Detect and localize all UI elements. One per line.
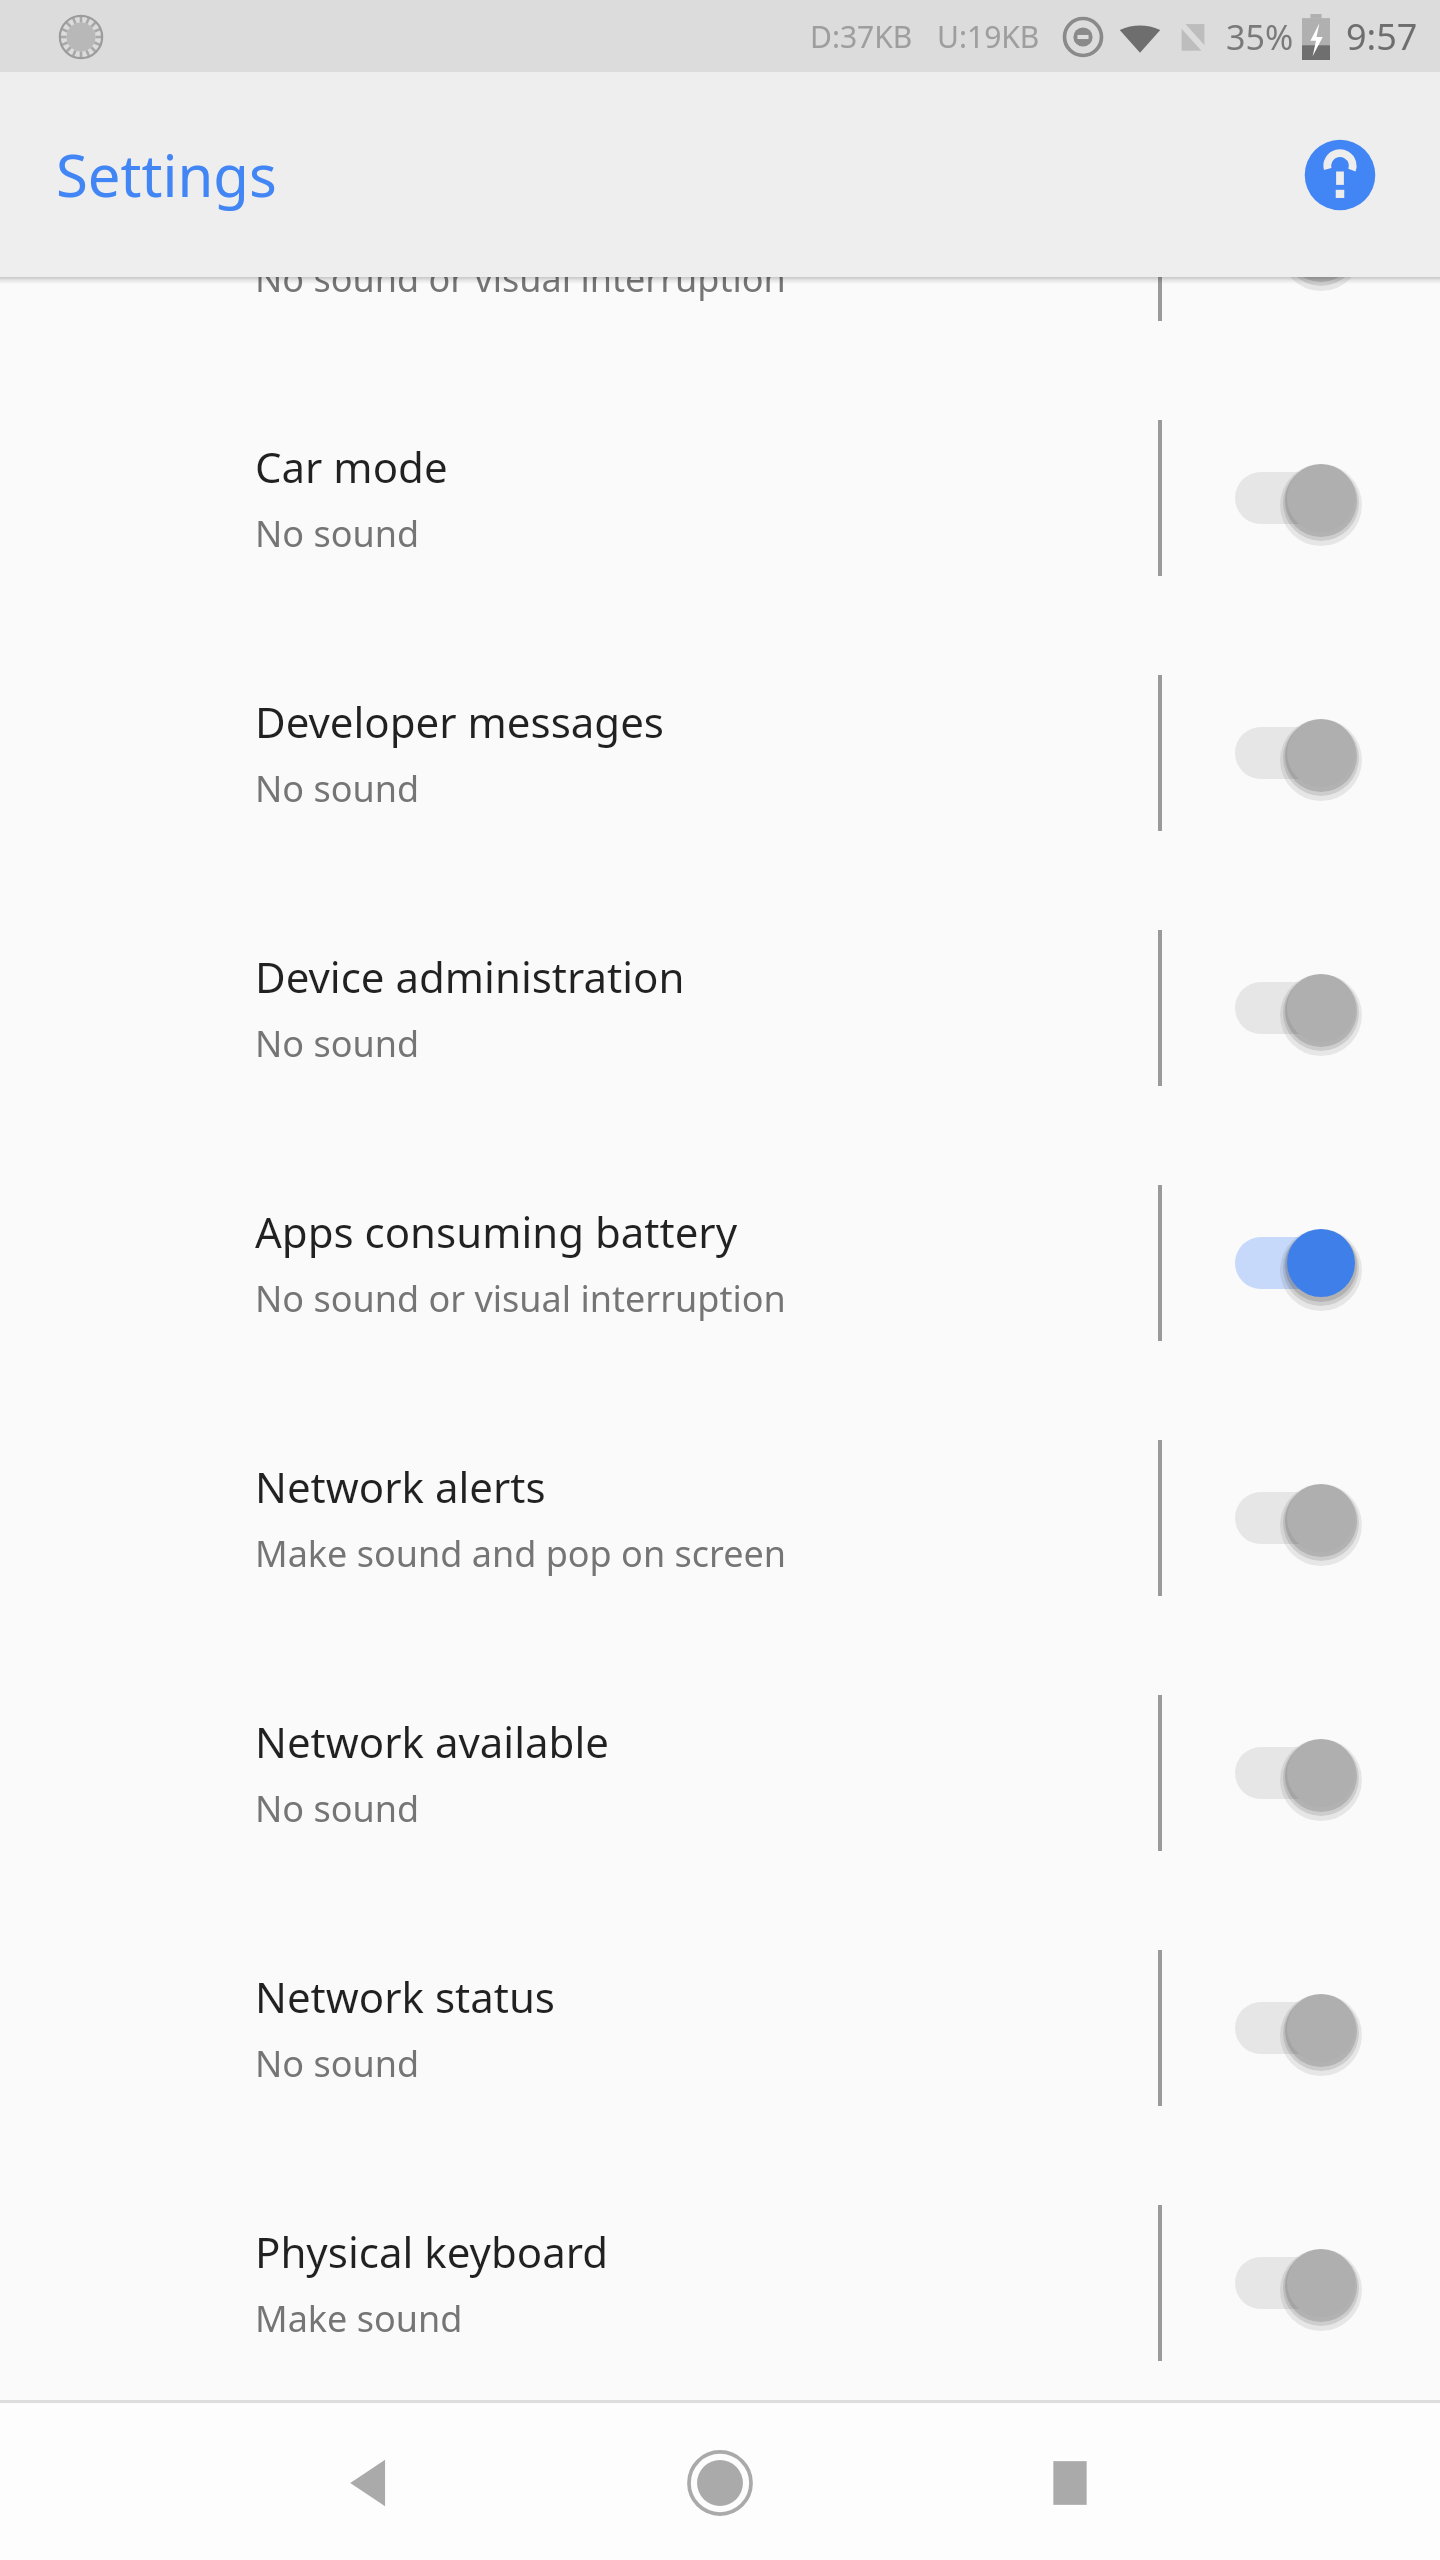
staticText: Physical keyboard: [255, 2223, 609, 2280]
button[interactable]: Home: [640, 2403, 800, 2560]
staticText: 35%: [1226, 14, 1294, 60]
staticText: No sound: [255, 2039, 420, 2088]
staticText: Network alerts: [255, 1458, 546, 1515]
staticText: App activity: [255, 183, 483, 240]
button[interactable]: Toggle App activity: [1205, 163, 1415, 323]
staticText: No sound: [255, 509, 420, 558]
staticText: Developer messages: [255, 693, 664, 750]
button[interactable]: Toggle Apps consuming battery: [1205, 1183, 1415, 1343]
staticText: U:19KB: [937, 16, 1040, 57]
staticText: No sound or visual interruption: [255, 1274, 786, 1323]
staticText: Device administration: [255, 948, 685, 1005]
button[interactable]: Toggle Network alerts: [1205, 1438, 1415, 1598]
staticText: Settings: [56, 135, 277, 214]
button[interactable]: Network available: [0, 1645, 1440, 1900]
button[interactable]: Physical keyboard: [0, 2155, 1440, 2400]
staticText: No sound: [255, 764, 420, 813]
staticText: Make sound: [255, 2294, 463, 2343]
staticText: D:37KB: [810, 16, 913, 57]
button[interactable]: Network status: [0, 1900, 1440, 2155]
button[interactable]: App activity: [0, 115, 1440, 370]
button[interactable]: Toggle Network status: [1205, 1948, 1415, 2108]
button[interactable]: Developer messages: [0, 625, 1440, 880]
button[interactable]: Toggle Device administration: [1205, 928, 1415, 1088]
button[interactable]: Help: [1292, 127, 1388, 223]
staticText: Car mode: [255, 438, 448, 495]
staticText: No sound: [255, 1784, 420, 1833]
button[interactable]: Car mode: [0, 370, 1440, 625]
button[interactable]: Toggle Car mode: [1205, 418, 1415, 578]
button[interactable]: Toggle Developer messages: [1205, 673, 1415, 833]
staticText: Apps consuming battery: [255, 1203, 738, 1260]
staticText: No sound or visual interruption: [255, 254, 786, 303]
button[interactable]: Back: [290, 2403, 450, 2560]
button[interactable]: Network alerts: [0, 1390, 1440, 1645]
button[interactable]: Recent apps: [990, 2403, 1150, 2560]
staticText: Make sound and pop on screen: [255, 1529, 787, 1578]
staticText: No sound: [255, 1019, 420, 1068]
staticText: Network available: [255, 1713, 609, 1770]
staticText: Network status: [255, 1968, 555, 2025]
button[interactable]: Apps consuming battery: [0, 1135, 1440, 1390]
button[interactable]: Device administration: [0, 880, 1440, 1135]
staticText: 9:57: [1346, 12, 1418, 61]
button[interactable]: Toggle Physical keyboard: [1205, 2203, 1415, 2363]
button[interactable]: Toggle Network available: [1205, 1693, 1415, 1853]
